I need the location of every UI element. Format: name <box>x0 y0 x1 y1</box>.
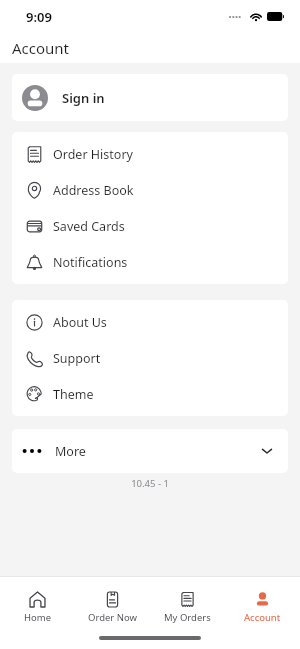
button[interactable]: More <box>12 429 288 473</box>
staticText: Saved Cards <box>53 218 125 235</box>
staticText: Order Now <box>88 611 137 624</box>
button[interactable]: Account <box>225 591 300 635</box>
button[interactable]: Notifications <box>12 244 288 280</box>
staticText: 10.45 - 1 <box>0 477 300 490</box>
staticText: Account <box>244 611 281 624</box>
staticText: About Us <box>53 314 107 331</box>
button[interactable]: About Us <box>12 304 288 340</box>
staticText: Notifications <box>53 254 128 271</box>
staticText: More <box>55 443 86 460</box>
staticText: Theme <box>53 386 94 403</box>
button[interactable]: Saved Cards <box>12 208 288 244</box>
button[interactable]: Home <box>0 591 75 635</box>
button[interactable]: My Orders <box>150 591 225 635</box>
button[interactable]: Order History <box>12 136 288 172</box>
staticText: My Orders <box>164 611 211 624</box>
button[interactable]: Sign in <box>12 74 288 121</box>
staticText: Sign in <box>62 89 105 107</box>
button[interactable]: Address Book <box>12 172 288 208</box>
staticText: Home <box>24 611 52 624</box>
button[interactable]: Order Now <box>75 591 150 635</box>
staticText: 9:09 <box>26 8 52 26</box>
staticText: Order History <box>53 146 133 163</box>
staticText: Address Book <box>53 182 134 199</box>
button[interactable]: Support <box>12 340 288 376</box>
staticText: Support <box>53 350 101 367</box>
staticText: Account <box>12 38 70 58</box>
button[interactable]: Theme <box>12 376 288 412</box>
